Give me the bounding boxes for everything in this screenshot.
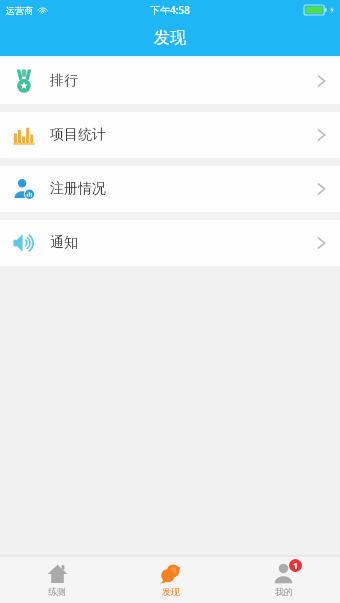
staticText: 发现 [154,28,186,48]
button[interactable]: 通知 [0,220,340,266]
button[interactable]: 排行 [0,58,340,104]
staticText: 1 [293,560,298,571]
staticText: 练测 [48,586,66,597]
staticText: 下午4:58 [150,3,190,17]
button[interactable]: 发现 [114,556,227,603]
button[interactable]: 项目统计 [0,112,340,158]
staticText: 发现 [162,586,180,597]
staticText: 我的 [275,586,293,597]
staticText: 注册情况 [50,180,106,198]
button[interactable]: 练测 [0,556,114,603]
staticText: 项目统计 [50,126,106,144]
staticText: 通知 [50,234,78,252]
staticText: 运营商 [6,5,33,16]
button[interactable]: 注册情况 [0,166,340,212]
staticText: 排行 [50,72,78,90]
button[interactable]: 1 [227,556,340,603]
